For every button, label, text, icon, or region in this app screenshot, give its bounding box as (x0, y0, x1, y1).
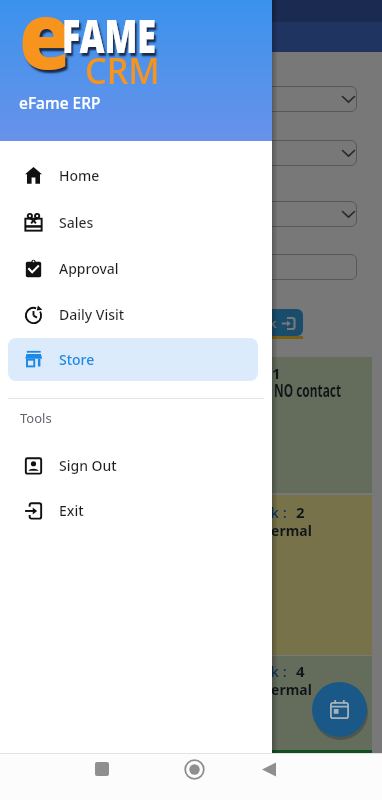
staticText: Tools (20, 409, 52, 427)
button[interactable]: Check (200, 309, 303, 336)
button[interactable] (24, 140, 357, 166)
staticText: eFame ERP (19, 92, 101, 113)
button[interactable]: Daily Visit (0, 291, 272, 337)
button[interactable]: Home (0, 152, 272, 198)
staticText: Home (59, 166, 100, 185)
button[interactable]: Sales (0, 199, 272, 245)
staticText: Check (239, 314, 277, 332)
staticText: Sales (59, 213, 94, 232)
staticText: 1 (272, 363, 281, 383)
button[interactable]: Store (0, 336, 272, 382)
button[interactable] (312, 682, 367, 737)
button[interactable]: Exit (0, 487, 272, 533)
button[interactable] (261, 762, 277, 777)
button[interactable]: Approval (0, 245, 272, 291)
staticText: e (19, 0, 72, 96)
staticText: NO contact (274, 379, 341, 402)
staticText: 4 (296, 661, 305, 681)
staticText: Thermal (254, 679, 313, 699)
staticText: FAME (62, 4, 157, 67)
button[interactable] (95, 762, 109, 776)
staticText: Store (59, 350, 95, 369)
staticText: 2 (296, 502, 305, 522)
button[interactable] (24, 201, 357, 227)
staticText: Thermal (254, 520, 313, 540)
button[interactable]: Sign Out (0, 442, 272, 488)
button[interactable]: Stock : (8, 656, 372, 751)
staticText: CRM (85, 46, 160, 95)
button[interactable] (24, 86, 357, 112)
staticText: Stock : (240, 502, 287, 522)
button[interactable] (24, 254, 357, 280)
button[interactable]: Stock : (8, 495, 372, 655)
staticText: Stock : (240, 661, 287, 681)
staticText: Sign Out (59, 456, 117, 475)
button[interactable] (184, 759, 205, 780)
staticText: Daily Visit (59, 305, 125, 324)
staticText: Exit (59, 501, 84, 520)
staticText: Approval (59, 259, 119, 278)
staticText: Stock : (207, 362, 254, 382)
button[interactable]: Stock : (8, 357, 372, 493)
